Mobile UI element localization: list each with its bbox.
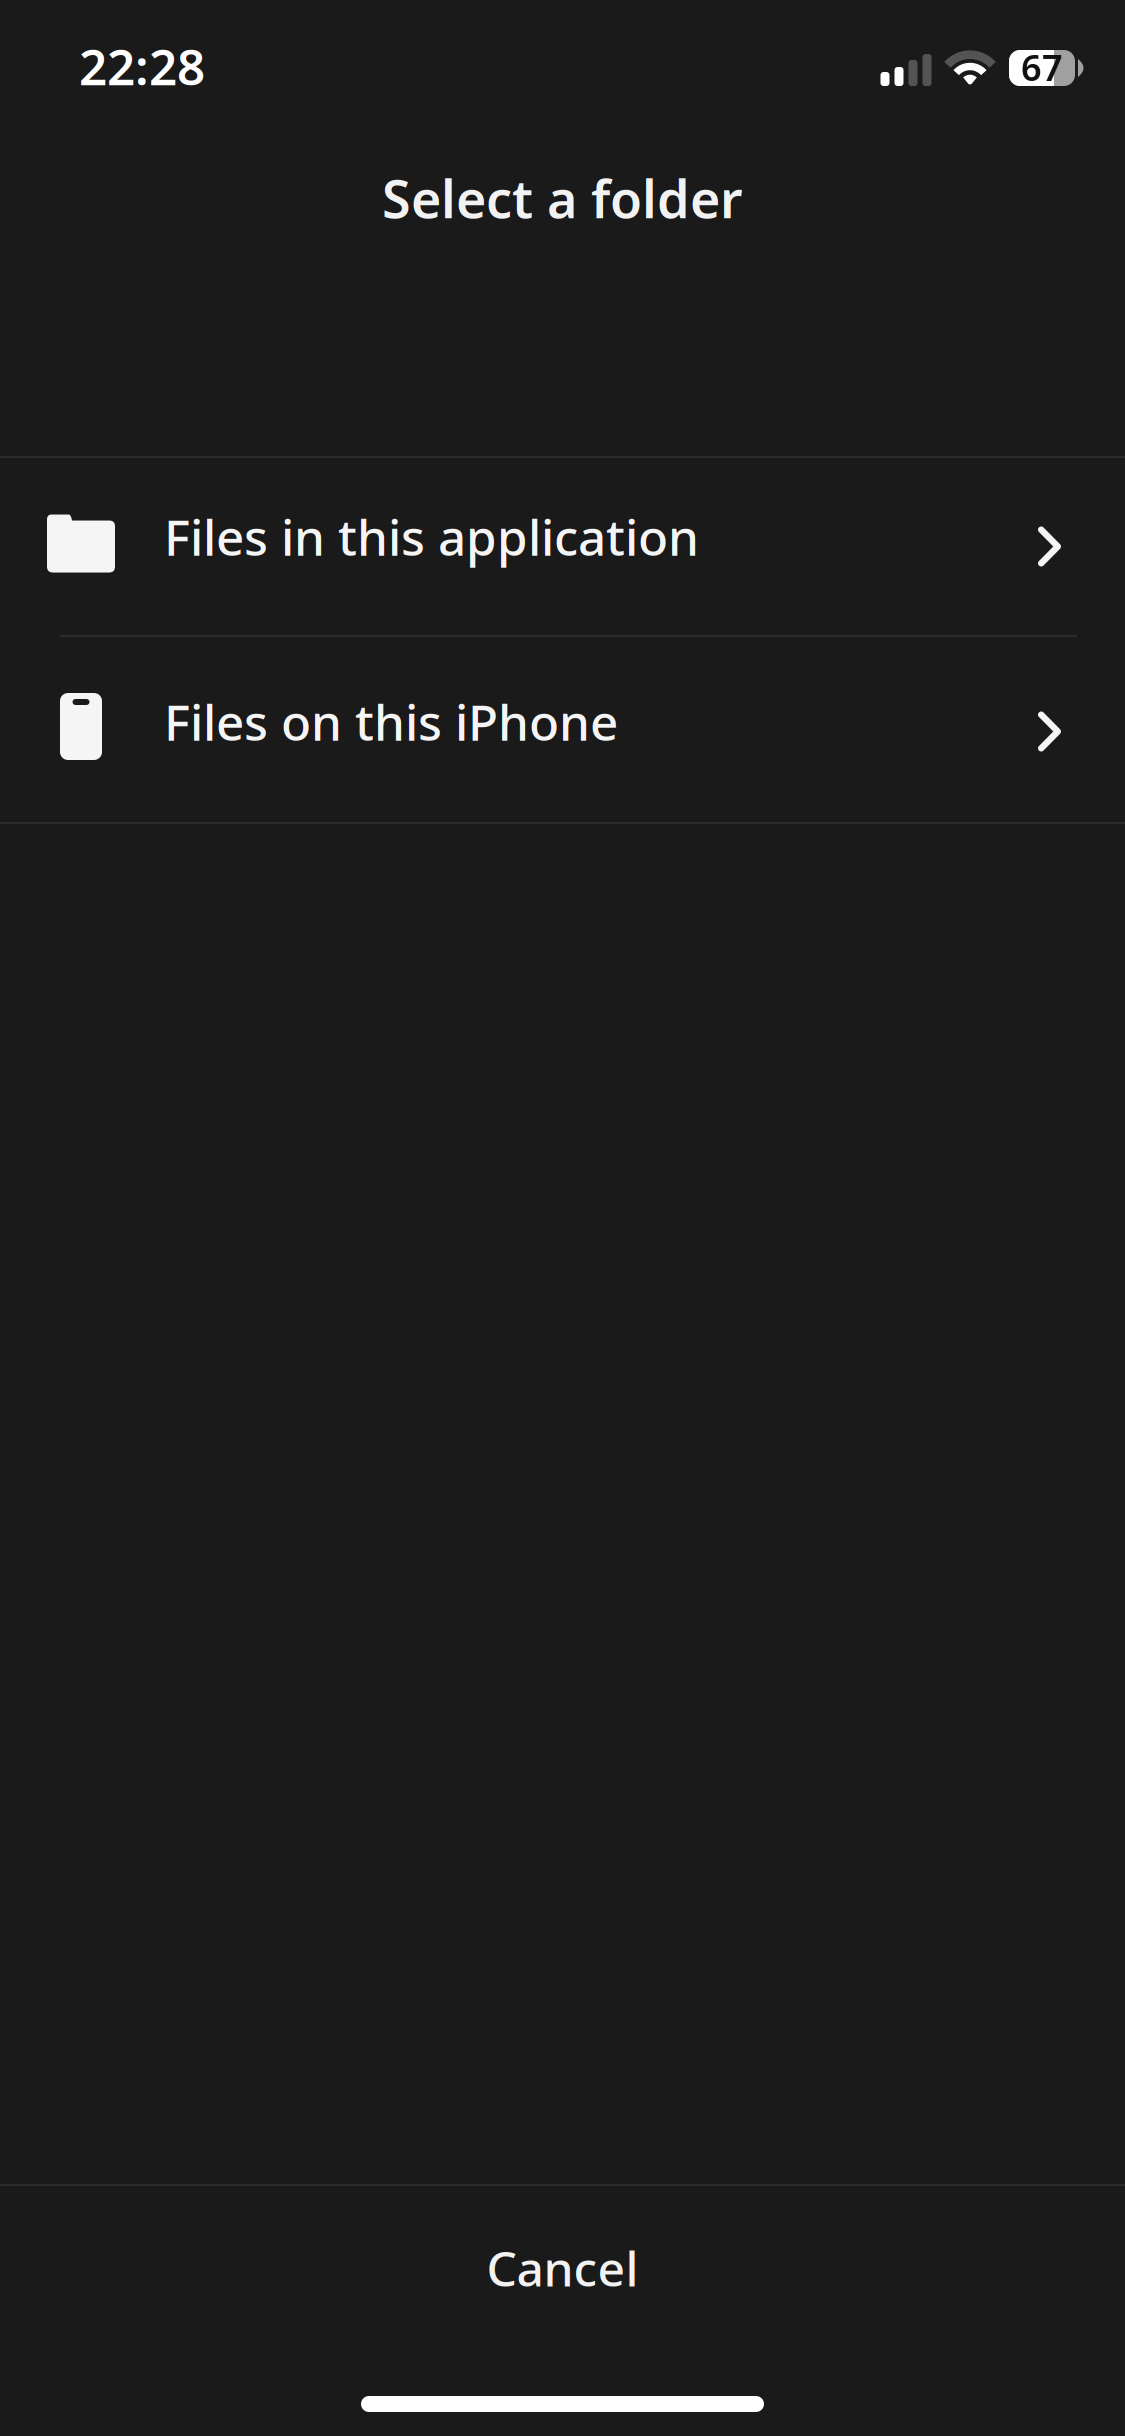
button[interactable]: Files in this application — [0, 458, 1125, 635]
staticText: Files in this application — [164, 504, 699, 569]
staticText: 67 — [1021, 43, 1063, 91]
button[interactable]: Cancel — [0, 2186, 1125, 2350]
button[interactable]: Files on this iPhone — [0, 637, 1125, 822]
staticText: Cancel — [486, 2236, 638, 2300]
staticText: Files on this iPhone — [164, 689, 618, 754]
staticText: 22:28 — [79, 33, 205, 99]
staticText: Select a folder — [382, 163, 743, 233]
